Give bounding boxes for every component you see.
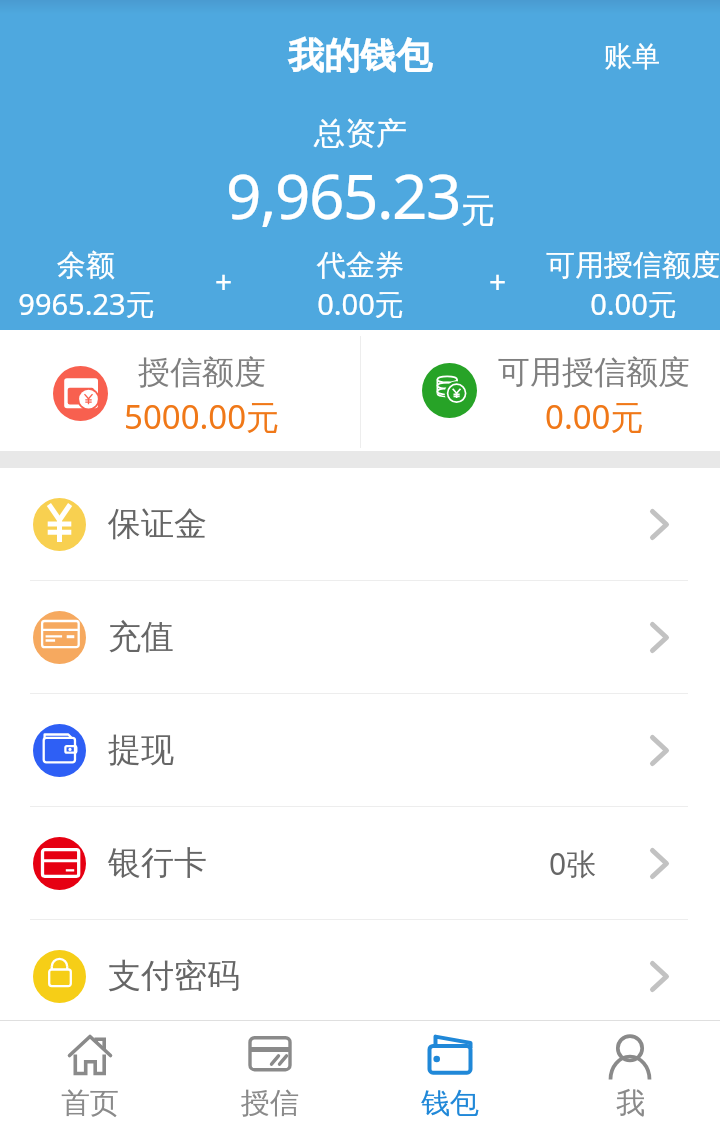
staticText: 0.00元 — [545, 394, 644, 439]
staticText: + — [489, 261, 507, 302]
staticText: 我 — [616, 1085, 645, 1122]
button[interactable]: Credit — [180, 1021, 360, 1130]
button[interactable]: 授信额度 — [0, 330, 360, 451]
staticText: 授信额度 — [138, 352, 266, 392]
button[interactable]: Home — [0, 1021, 180, 1130]
button[interactable]: 银行卡 — [0, 807, 720, 919]
button[interactable]: Wallet — [360, 1021, 540, 1130]
staticText: 充值 — [108, 616, 174, 658]
staticText: 0.00元 — [590, 284, 677, 324]
staticText: 代金券 — [317, 247, 404, 284]
button[interactable]: 可用授信额度 — [361, 330, 720, 451]
button[interactable]: 账单 — [580, 31, 720, 84]
staticText: 9,965.23 — [226, 153, 461, 237]
staticText: 5000.00元 — [124, 394, 280, 439]
staticText: + — [215, 261, 233, 302]
staticText: 提现 — [108, 729, 174, 771]
button[interactable]: Profile — [540, 1021, 720, 1130]
staticText: 9965.23元 — [18, 284, 155, 324]
staticText: 钱包 — [421, 1085, 479, 1122]
staticText: 支付密码 — [108, 955, 240, 997]
button[interactable]: 保证金 — [0, 468, 720, 580]
staticText: 元 — [461, 189, 495, 232]
staticText: 银行卡 — [108, 842, 207, 884]
staticText: 授信 — [241, 1085, 299, 1122]
staticText: 我的钱包 — [288, 33, 432, 78]
staticText: 保证金 — [108, 503, 207, 545]
staticText: 0.00元 — [317, 284, 404, 324]
staticText: 余额 — [57, 247, 115, 284]
staticText: 总资产 — [314, 114, 407, 153]
staticText: 可用授信额度 — [498, 352, 690, 392]
staticText: 账单 — [604, 39, 660, 74]
button[interactable]: 支付密码 — [0, 920, 720, 1020]
staticText: 首页 — [61, 1085, 119, 1122]
staticText: 0张 — [549, 843, 597, 884]
button[interactable]: 充值 — [0, 581, 720, 693]
staticText: 可用授信额度 — [546, 247, 720, 284]
button[interactable]: 提现 — [0, 694, 720, 806]
